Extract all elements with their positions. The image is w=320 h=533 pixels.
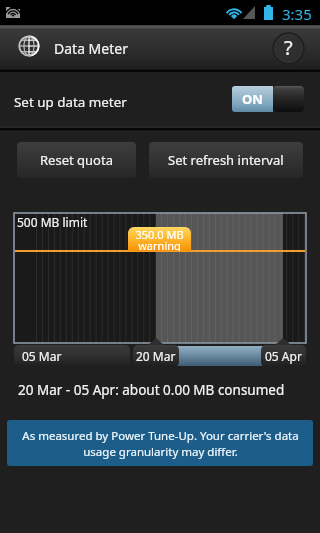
staticText: Set refresh interval	[168, 151, 284, 169]
staticText: 3:35	[282, 4, 312, 24]
staticText: Reset quota	[40, 151, 113, 169]
staticText: 05 Mar	[22, 348, 62, 364]
staticText: ?	[284, 34, 293, 61]
staticText: Set up data meter	[14, 93, 127, 111]
staticText: 350.0 MB warning	[135, 227, 184, 251]
button[interactable]: Help	[272, 32, 305, 65]
button[interactable]: 20 Mar	[133, 345, 179, 367]
staticText: 500 MB limit	[17, 214, 88, 230]
button[interactable]: Set refresh interval	[149, 142, 303, 178]
button[interactable]: Reset quota	[17, 142, 136, 178]
button[interactable]: As measured by Power Tune-Up. Your carri…	[7, 420, 313, 466]
staticText: Data Meter	[54, 39, 128, 58]
staticText: ON	[242, 90, 263, 108]
staticText: 05 Apr	[265, 348, 302, 364]
staticText: As measured by Power Tune-Up. Your carri…	[22, 428, 299, 459]
staticText: 20 Mar	[136, 348, 176, 364]
staticText: 20 Mar - 05 Apr: about 0.00 MB consumed	[18, 381, 285, 399]
button[interactable]: 05 Mar	[14, 345, 130, 367]
button[interactable]: 05 Apr	[261, 345, 306, 367]
button[interactable]: Set up data meter switch, on	[232, 86, 304, 112]
